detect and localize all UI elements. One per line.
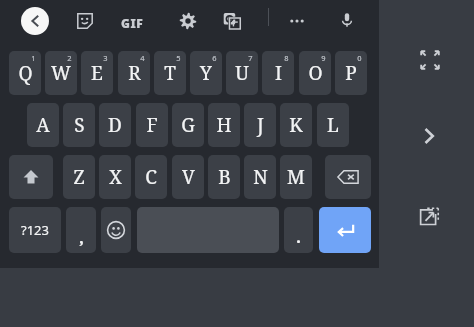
staticText: 6 bbox=[212, 53, 217, 63]
staticText: R bbox=[128, 60, 141, 86]
button[interactable]: Voice input bbox=[332, 5, 362, 35]
staticText: F bbox=[146, 112, 158, 138]
staticText: H bbox=[216, 112, 232, 138]
staticText: W bbox=[51, 60, 71, 86]
staticText: ?123 bbox=[21, 221, 49, 239]
staticText: L bbox=[327, 112, 339, 138]
staticText: 3 bbox=[103, 53, 108, 63]
button[interactable]: Y bbox=[190, 51, 222, 95]
staticText: P bbox=[345, 60, 357, 86]
button[interactable]: Period bbox=[284, 207, 313, 253]
staticText: GIF bbox=[121, 15, 144, 31]
button[interactable]: J bbox=[244, 103, 276, 147]
button[interactable]: Backspace bbox=[325, 155, 371, 199]
staticText: 7 bbox=[248, 53, 253, 63]
staticText: 9 bbox=[321, 53, 326, 63]
staticText: J bbox=[257, 112, 264, 138]
staticText: G bbox=[181, 112, 195, 138]
button[interactable]: N bbox=[244, 155, 276, 199]
staticText: V bbox=[182, 164, 195, 190]
button[interactable]: X bbox=[99, 155, 131, 199]
button[interactable]: Next bbox=[414, 120, 446, 152]
button[interactable]: Shift bbox=[9, 155, 53, 199]
staticText: A bbox=[36, 112, 50, 138]
staticText: Z bbox=[73, 164, 85, 190]
button[interactable]: U bbox=[226, 51, 258, 95]
staticText: Q bbox=[18, 60, 33, 86]
staticText: 2 bbox=[67, 53, 72, 63]
button[interactable]: I bbox=[262, 51, 294, 95]
button[interactable]: Open in new window bbox=[412, 200, 446, 234]
button[interactable]: G bbox=[172, 103, 204, 147]
button[interactable]: Z bbox=[63, 155, 95, 199]
button[interactable]: Back bbox=[21, 7, 49, 35]
button[interactable]: V bbox=[172, 155, 204, 199]
button[interactable]: Enter bbox=[319, 207, 371, 253]
button[interactable]: E bbox=[81, 51, 113, 95]
button[interactable]: H bbox=[208, 103, 240, 147]
staticText: O bbox=[308, 60, 323, 86]
button[interactable]: Settings bbox=[173, 6, 203, 36]
button[interactable]: GIF bbox=[115, 6, 149, 40]
button[interactable]: S bbox=[63, 103, 95, 147]
button[interactable]: C bbox=[135, 155, 167, 199]
button[interactable]: Q bbox=[9, 51, 41, 95]
staticText: B bbox=[218, 164, 231, 190]
button[interactable]: Fullscreen bbox=[414, 44, 446, 76]
button[interactable]: More options bbox=[282, 6, 312, 36]
staticText: 4 bbox=[140, 53, 145, 63]
staticText: N bbox=[253, 164, 268, 190]
button[interactable]: D bbox=[99, 103, 131, 147]
staticText: . bbox=[296, 225, 301, 248]
button[interactable]: L bbox=[317, 103, 349, 147]
staticText: C bbox=[145, 164, 157, 190]
button[interactable]: ?123 bbox=[9, 207, 61, 253]
staticText: M bbox=[287, 164, 305, 190]
button[interactable]: T bbox=[154, 51, 186, 95]
button[interactable]: B bbox=[208, 155, 240, 199]
staticText: U bbox=[235, 60, 249, 86]
staticText: 0 bbox=[357, 53, 362, 63]
button[interactable]: M bbox=[280, 155, 312, 199]
staticText: , bbox=[79, 226, 84, 249]
button[interactable]: Stickers bbox=[70, 6, 100, 36]
button[interactable]: Translate bbox=[217, 6, 247, 36]
staticText: K bbox=[289, 112, 303, 138]
button[interactable]: A bbox=[27, 103, 59, 147]
staticText: X bbox=[109, 164, 122, 190]
staticText: S bbox=[74, 112, 85, 138]
button[interactable]: F bbox=[136, 103, 168, 147]
staticText: I bbox=[275, 60, 282, 86]
button[interactable]: K bbox=[280, 103, 312, 147]
button[interactable]: O bbox=[299, 51, 331, 95]
staticText: 5 bbox=[176, 53, 181, 63]
staticText: D bbox=[108, 112, 122, 138]
staticText: T bbox=[164, 60, 176, 86]
staticText: 1 bbox=[31, 53, 36, 63]
button[interactable]: Comma bbox=[66, 207, 96, 253]
button[interactable]: P bbox=[335, 51, 367, 95]
button[interactable]: Emoji bbox=[101, 207, 131, 253]
button[interactable]: R bbox=[118, 51, 150, 95]
staticText: Y bbox=[200, 60, 212, 86]
button[interactable]: W bbox=[45, 51, 77, 95]
staticText: E bbox=[91, 60, 103, 86]
staticText: 8 bbox=[284, 53, 289, 63]
